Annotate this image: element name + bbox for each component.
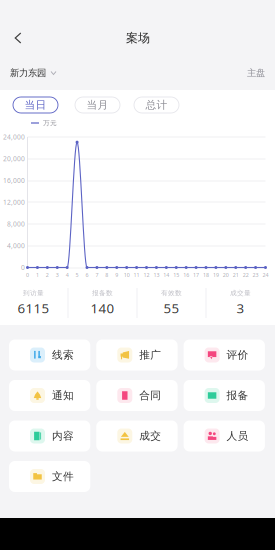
staticText: 8 (105, 271, 108, 279)
staticText: 20 (223, 271, 229, 279)
staticText: 55 (163, 299, 179, 317)
staticText: 7 (95, 271, 98, 279)
staticText: 1 (36, 271, 39, 279)
staticText: 6115 (17, 299, 49, 317)
staticText: 新力东园 (10, 67, 46, 79)
staticText: 0 (21, 263, 25, 272)
button[interactable]: 成交 (96, 420, 178, 451)
staticText: 17 (193, 271, 199, 279)
staticText: 12,000 (3, 198, 25, 207)
button[interactable]: 内容 (9, 420, 90, 451)
staticText: 23 (253, 271, 259, 279)
staticText: 通知 (52, 389, 74, 402)
button[interactable]: 合同 (96, 380, 178, 411)
staticText: 当月 (86, 98, 108, 111)
staticText: 万元 (43, 119, 57, 127)
staticText: 8,000 (7, 220, 25, 228)
staticText: 文件 (52, 470, 74, 483)
staticText: 报备数 (92, 289, 113, 297)
staticText: 12 (143, 271, 149, 279)
staticText: 22 (243, 271, 249, 279)
staticText: 11 (134, 271, 140, 279)
staticText: 线索 (52, 348, 74, 361)
staticText: 6 (85, 271, 88, 279)
button[interactable]: 新力东园 (10, 63, 70, 83)
staticText: 140 (90, 299, 114, 317)
staticText: 有效数 (161, 289, 182, 297)
staticText: 24 (262, 271, 268, 279)
staticText: 0 (26, 271, 29, 279)
button[interactable]: 通知 (9, 380, 90, 411)
staticText: 21 (233, 271, 239, 279)
button[interactable]: 当月 (75, 97, 120, 113)
staticText: 总计 (145, 98, 167, 111)
staticText: 14 (163, 271, 169, 279)
button[interactable]: 文件 (9, 461, 90, 492)
staticText: 2 (46, 271, 49, 279)
staticText: 3 (56, 271, 59, 279)
staticText: 人员 (227, 429, 249, 442)
staticText: 20,000 (3, 154, 25, 163)
staticText: 到访量 (23, 289, 44, 297)
button[interactable]: 推广 (96, 339, 178, 370)
staticText: 案场 (126, 31, 150, 45)
button[interactable]: 评价 (184, 339, 265, 370)
staticText: 9 (115, 271, 118, 279)
button[interactable]: 当日 (13, 97, 58, 113)
button[interactable]: 总计 (134, 97, 179, 113)
staticText: 评价 (227, 348, 249, 361)
staticText: 4 (66, 271, 69, 279)
button[interactable]: 线索 (9, 339, 90, 370)
staticText: 3 (236, 299, 244, 317)
staticText: 13 (153, 271, 159, 279)
staticText: 4,000 (7, 241, 25, 250)
staticText: 5 (76, 271, 79, 279)
staticText: 推广 (139, 348, 161, 361)
staticText: 报备 (227, 389, 249, 402)
staticText: 内容 (52, 429, 74, 442)
button[interactable]: 主盘 (235, 63, 265, 83)
staticText: 成交 (139, 429, 161, 442)
staticText: 成交量 (230, 289, 251, 297)
button[interactable]: 报备 (184, 380, 265, 411)
button[interactable]: Back (4, 23, 32, 53)
staticText: 当日 (24, 98, 46, 111)
staticText: 合同 (139, 389, 161, 402)
staticText: 10 (124, 271, 130, 279)
staticText: 24,000 (3, 133, 25, 141)
button[interactable]: 人员 (184, 420, 265, 451)
staticText: 19 (213, 271, 219, 279)
staticText: 16 (183, 271, 189, 279)
staticText: 主盘 (247, 67, 265, 79)
staticText: 16,000 (3, 176, 25, 185)
staticText: 15 (173, 271, 179, 279)
staticText: 18 (203, 271, 209, 279)
